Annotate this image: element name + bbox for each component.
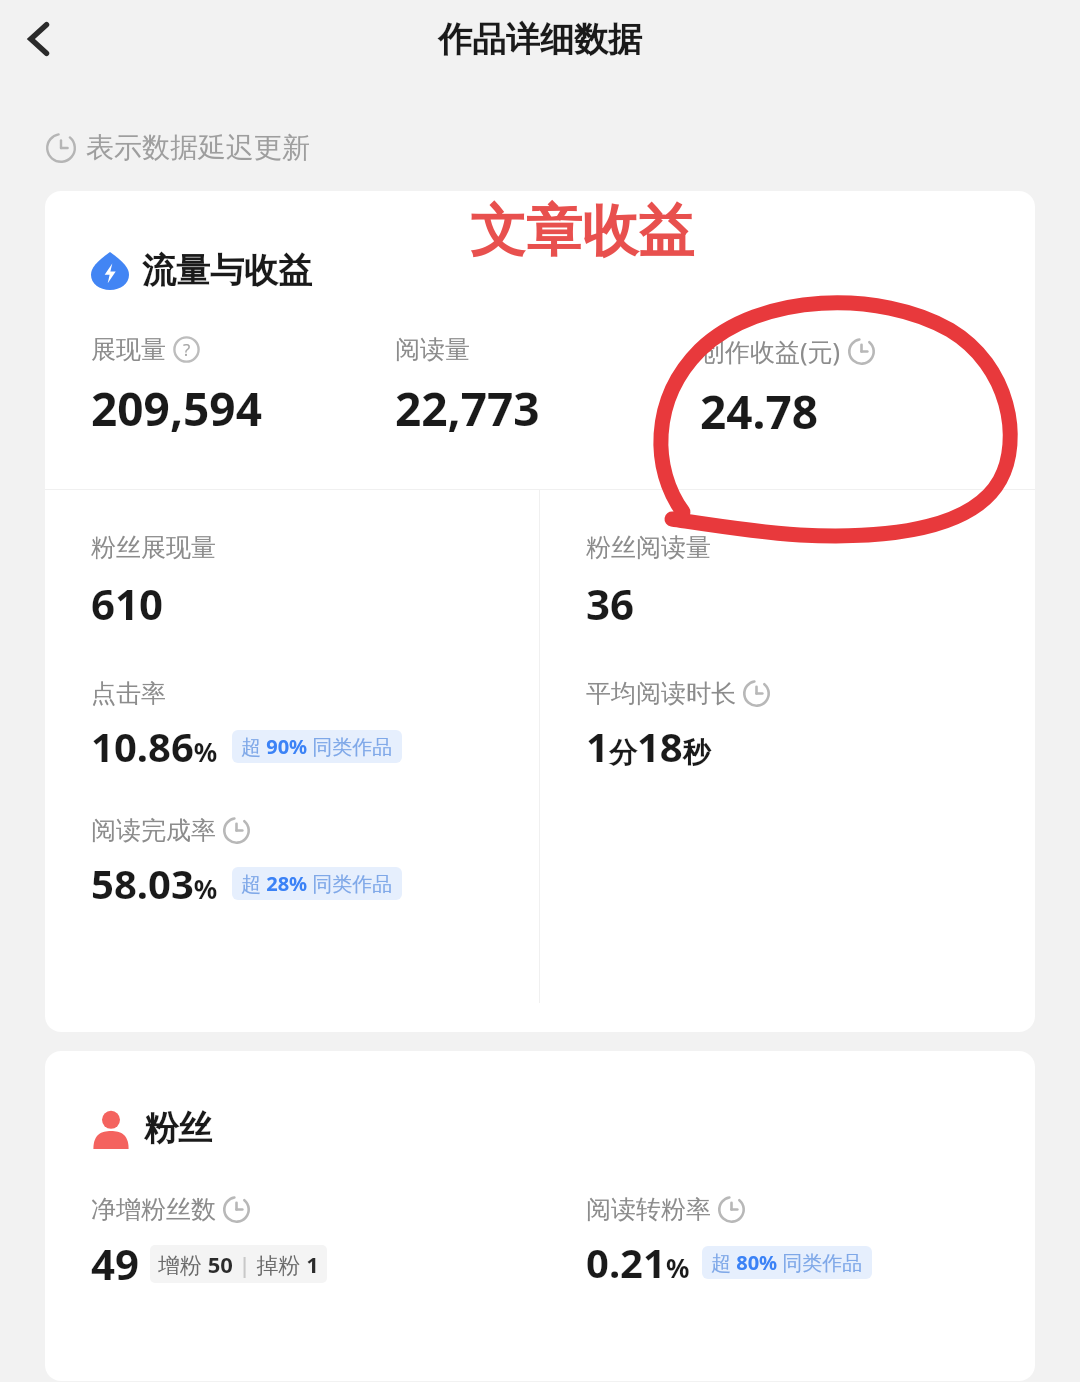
staticText: 作品详细数据 xyxy=(438,18,642,61)
staticText: 超 80% 同类作品 xyxy=(711,1249,863,1276)
staticText: 209,594 xyxy=(91,377,262,440)
staticText: 超 90% 同类作品 xyxy=(241,733,393,760)
staticText: 展现量 xyxy=(91,334,166,365)
staticText: 粉丝 xyxy=(144,1107,212,1150)
staticText: 58.03% xyxy=(91,856,218,910)
staticText: 阅读转粉率 xyxy=(586,1194,711,1225)
staticText: 创作收益(元) xyxy=(700,334,841,368)
staticText: 点击率 xyxy=(91,678,166,709)
staticText: 阅读完成率 xyxy=(91,815,216,846)
staticText: 22,773 xyxy=(395,377,540,440)
staticText: 0.21% xyxy=(586,1235,690,1289)
staticText: ? xyxy=(183,338,191,361)
staticText: 净增粉丝数 xyxy=(91,1194,216,1225)
staticText: 10.86% xyxy=(91,719,218,773)
staticText: 表示数据延迟更新 xyxy=(86,130,310,165)
staticText: 610 xyxy=(91,575,164,632)
staticText: 增粉 50 | 掉粉 1 xyxy=(158,1249,319,1279)
staticText: 平均阅读时长 xyxy=(586,678,736,709)
staticText: 流量与收益 xyxy=(142,249,312,292)
staticText: 粉丝阅读量 xyxy=(586,532,711,563)
staticText: 粉丝展现量 xyxy=(91,532,216,563)
staticText: 文章收益 xyxy=(470,196,694,267)
staticText: 阅读量 xyxy=(395,334,470,365)
staticText: 24.78 xyxy=(700,380,819,443)
staticText: 1分18秒 xyxy=(586,719,711,773)
staticText: 36 xyxy=(586,575,635,632)
button[interactable]: Back xyxy=(0,0,78,78)
staticText: 超 28% 同类作品 xyxy=(241,870,393,897)
staticText: 49 xyxy=(91,1235,140,1292)
